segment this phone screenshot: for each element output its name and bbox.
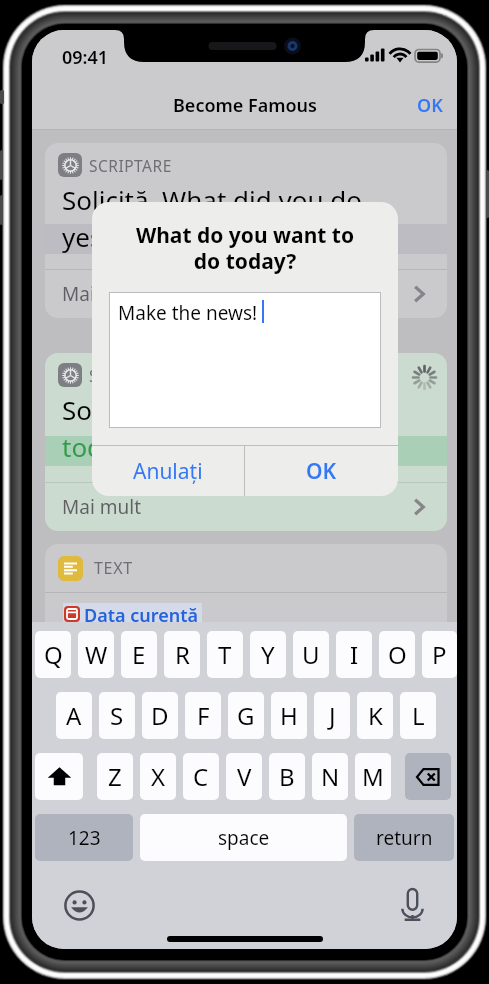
button[interactable]: P (422, 631, 457, 678)
staticText: X (151, 760, 166, 793)
staticText: M (362, 760, 384, 793)
staticText: 123 (68, 825, 101, 851)
staticText: TEXT (94, 557, 133, 579)
staticText: E (132, 638, 146, 671)
button[interactable]: U (293, 631, 329, 678)
staticText: L (412, 699, 425, 732)
staticText: K (368, 699, 383, 732)
button[interactable]: Backspace (405, 753, 451, 800)
button[interactable]: X (140, 753, 176, 800)
button[interactable]: Make the news! (110, 293, 380, 427)
staticText: V (237, 760, 252, 793)
staticText: OK (306, 457, 337, 486)
button[interactable]: Q (35, 631, 71, 678)
staticText: F (197, 699, 210, 732)
staticText: B (279, 760, 295, 793)
button[interactable]: S (99, 692, 135, 739)
staticText: SCRIPTARE (89, 365, 172, 386)
button[interactable]: TEXT (45, 544, 447, 664)
staticText: J (329, 699, 336, 732)
staticText: D (151, 699, 169, 732)
staticText: U (302, 638, 320, 671)
staticText: Data curentă (84, 603, 199, 625)
staticText: Q (44, 638, 63, 671)
button[interactable]: W (78, 631, 114, 678)
button[interactable]: SCRIPTARE (45, 143, 447, 318)
staticText: R (175, 638, 190, 671)
staticText: S (110, 699, 124, 732)
button[interactable]: F (185, 692, 221, 739)
button[interactable]: V (226, 753, 262, 800)
staticText: Solicită What did you do (62, 182, 363, 217)
button[interactable]: 123 (35, 814, 133, 861)
button[interactable]: OK (403, 86, 457, 125)
staticText: G (237, 699, 255, 732)
button[interactable]: J (314, 692, 350, 739)
button[interactable]: D (142, 692, 178, 739)
button[interactable]: Mai mult (45, 483, 447, 531)
button[interactable]: Shift (35, 753, 83, 800)
staticText: O (388, 638, 407, 671)
button[interactable]: SCRIPTARE (45, 353, 447, 531)
staticText: H (280, 699, 298, 732)
button[interactable]: K (357, 692, 393, 739)
staticText: A (66, 699, 82, 732)
button[interactable]: B (269, 753, 305, 800)
staticText: N (321, 760, 340, 793)
button[interactable]: M (355, 753, 391, 800)
button[interactable]: Z (97, 753, 133, 800)
button[interactable]: O (379, 631, 415, 678)
button[interactable]: OK (245, 446, 398, 496)
button[interactable]: return (354, 814, 454, 861)
staticText: yes (62, 219, 103, 254)
button[interactable]: R (164, 631, 200, 678)
staticText: C (193, 760, 209, 793)
staticText: Solicită (62, 392, 149, 427)
staticText: I (350, 638, 359, 671)
button[interactable]: Y (250, 631, 286, 678)
staticText: SCRIPTARE (89, 155, 172, 176)
button[interactable]: A (56, 692, 92, 739)
button[interactable]: Dictation (390, 882, 434, 926)
staticText: return (376, 825, 433, 851)
button[interactable]: H (271, 692, 307, 739)
staticText: What do you want to do today? (92, 221, 398, 275)
button[interactable]: I (336, 631, 372, 678)
staticText: Make the news! (118, 300, 258, 326)
button[interactable]: T (207, 631, 243, 678)
staticText: space (218, 825, 270, 851)
button[interactable]: G (228, 692, 264, 739)
staticText: Mai mult (62, 281, 142, 307)
staticText: 09:41 (62, 45, 109, 70)
staticText: Become Famous (173, 93, 317, 118)
button[interactable]: space (140, 814, 347, 861)
staticText: Y (261, 638, 275, 671)
staticText: Mai mult (62, 494, 142, 520)
button[interactable]: L (400, 692, 436, 739)
staticText: Z (108, 760, 122, 793)
staticText: OK (417, 93, 443, 118)
staticText: Anulați (133, 457, 203, 486)
button[interactable]: N (312, 753, 348, 800)
staticText: W (85, 638, 108, 671)
button[interactable]: Anulați (92, 446, 244, 496)
staticText: P (432, 638, 447, 671)
staticText: today (62, 429, 131, 464)
button[interactable]: E (121, 631, 157, 678)
button[interactable]: C (183, 753, 219, 800)
button[interactable]: Mai mult (45, 270, 447, 318)
staticText: T (218, 638, 232, 671)
button[interactable]: Emoji keyboard (57, 883, 101, 927)
